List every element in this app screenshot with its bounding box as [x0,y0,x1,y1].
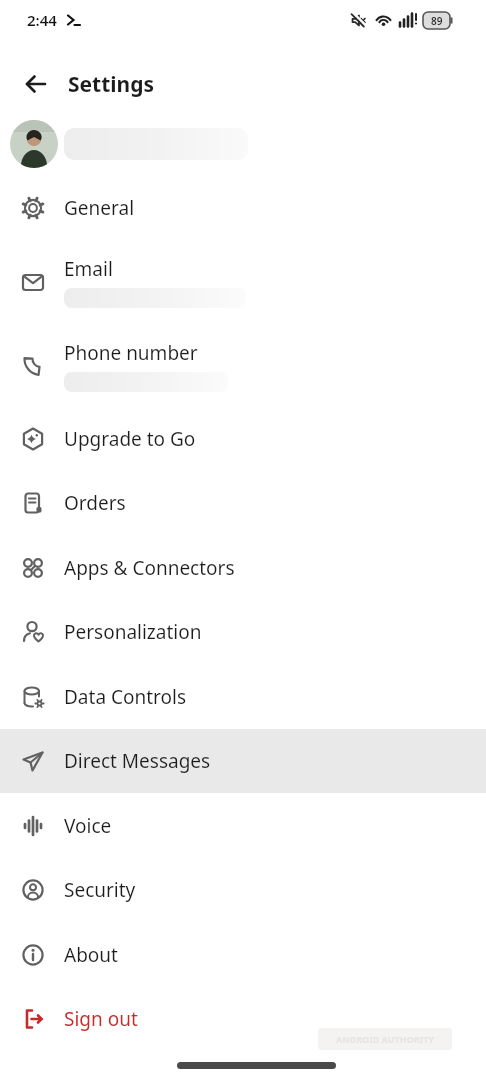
staticText: Personalization [64,619,202,645]
button[interactable]: Upgrade to Go [0,407,486,471]
button[interactable] [0,118,486,170]
button[interactable] [16,64,56,104]
button[interactable]: Data Controls [0,664,486,729]
staticText: Upgrade to Go [64,426,196,452]
staticText: ANDROID AUTHORITY [336,1033,435,1045]
button[interactable]: Apps & Connectors [0,535,486,600]
staticText: 2:44 [27,10,57,30]
staticText: Orders [64,490,126,516]
button[interactable]: Sign out [0,987,486,1051]
staticText: General [64,195,135,221]
staticText: Sign out [64,1006,138,1032]
button[interactable]: About [0,922,486,987]
button[interactable]: Phone number [0,324,486,408]
staticText: Security [64,877,136,903]
button[interactable]: General [0,176,486,240]
staticText: Phone number [64,340,198,366]
button[interactable]: Email [0,240,486,324]
staticText: Email [64,256,113,282]
button[interactable]: Personalization [0,600,486,664]
staticText: 89 [431,14,443,28]
staticText: Settings [68,70,155,99]
button[interactable]: Security [0,858,486,922]
staticText: Data Controls [64,684,187,710]
button[interactable]: Voice [0,793,486,858]
staticText: Direct Messages [64,748,211,774]
staticText: Voice [64,813,112,839]
button[interactable]: Direct Messages [0,729,486,793]
staticText: About [64,942,118,968]
button[interactable]: Orders [0,471,486,535]
staticText: Apps & Connectors [64,555,235,581]
